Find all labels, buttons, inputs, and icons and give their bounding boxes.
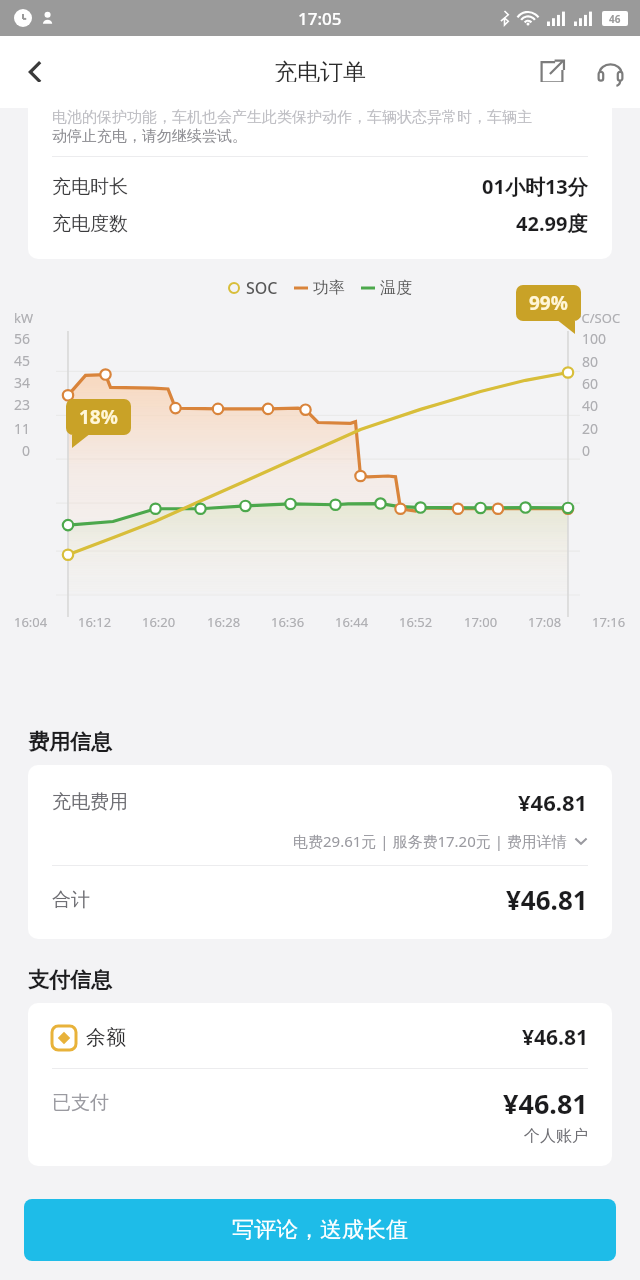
staticText: 01小时13分 xyxy=(482,173,588,200)
staticText: 0 xyxy=(22,441,31,460)
staticText: 费用信息 xyxy=(28,729,112,755)
staticText: kW xyxy=(14,309,34,327)
staticText: 20 xyxy=(582,419,599,438)
staticText: ¥46.81 xyxy=(522,1023,588,1052)
staticText: 充电订单 xyxy=(274,58,366,87)
button[interactable]: 电费29.61元 | 服务费17.20元 | 费用详情 xyxy=(52,831,588,851)
staticText: 写评论，送成长值 xyxy=(232,1216,408,1244)
staticText: 个人账户 xyxy=(524,1126,588,1146)
staticText: 16:52 xyxy=(399,613,433,631)
staticText: 56 xyxy=(14,329,31,348)
staticText: 17:08 xyxy=(528,613,562,631)
staticText: 17:00 xyxy=(464,613,498,631)
staticText: 23 xyxy=(14,395,31,414)
staticText: 充电度数 xyxy=(52,212,128,236)
staticText: 60 xyxy=(582,374,599,393)
staticText: ¥46.81 xyxy=(518,787,588,817)
button[interactable]: Customer service xyxy=(580,42,640,102)
staticText: 16:36 xyxy=(271,613,305,631)
staticText: 17:05 xyxy=(298,7,342,30)
staticText: °C/SOC xyxy=(576,309,621,327)
staticText: 充电费用 xyxy=(52,790,128,814)
staticText: 16:12 xyxy=(78,613,112,631)
staticText: 80 xyxy=(582,352,599,371)
staticText: ¥46.81 xyxy=(506,882,588,917)
staticText: 16:28 xyxy=(207,613,241,631)
staticText: 16:44 xyxy=(335,613,369,631)
staticText: 100 xyxy=(582,329,607,348)
staticText: 功率 xyxy=(313,278,345,298)
button[interactable]: 写评论，送成长值 xyxy=(24,1199,616,1261)
button[interactable]: 余额 xyxy=(52,1023,588,1052)
staticText: 18% xyxy=(79,404,118,430)
staticText: 40 xyxy=(582,396,599,415)
staticText: 16:20 xyxy=(142,613,176,631)
staticText: 46 xyxy=(609,12,621,26)
staticText: 充电时长 xyxy=(52,175,128,199)
staticText: 已支付 xyxy=(52,1091,109,1115)
button[interactable]: Back xyxy=(0,36,72,108)
staticText: 34 xyxy=(14,373,31,392)
staticText: 42.99度 xyxy=(516,210,588,237)
staticText: 支付信息 xyxy=(28,967,112,993)
staticText: 合计 xyxy=(52,888,90,912)
staticText: ¥46.81 xyxy=(503,1085,588,1122)
button[interactable]: Share xyxy=(524,44,580,100)
staticText: 电池的保护功能，车机也会产生此类保护动作，车辆状态异常时，车辆主 xyxy=(52,108,532,127)
staticText: 99% xyxy=(529,290,568,316)
staticText: 45 xyxy=(14,351,31,370)
staticText: 17:16 xyxy=(592,613,626,631)
staticText: 余额 xyxy=(86,1025,126,1050)
staticText: SOC xyxy=(246,277,278,299)
staticText: 0 xyxy=(582,441,591,460)
staticText: 温度 xyxy=(380,278,412,298)
staticText: 11 xyxy=(14,419,31,438)
staticText: 16:04 xyxy=(14,613,48,631)
staticText: 动停止充电，请勿继续尝试。 xyxy=(52,127,247,146)
staticText: 电费29.61元 | 服务费17.20元 | 费用详情 xyxy=(293,831,567,851)
